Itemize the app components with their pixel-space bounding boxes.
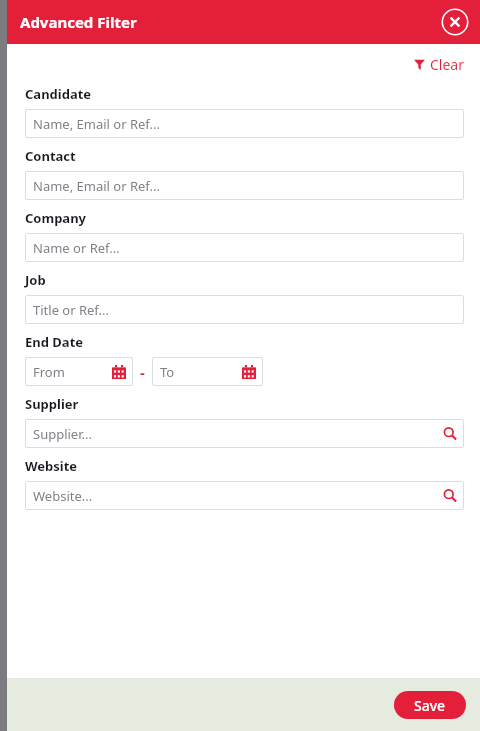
button[interactable]: To: [152, 357, 263, 386]
button[interactable]: Name, Email or Ref...: [25, 171, 464, 200]
other: Search: [442, 488, 457, 503]
staticText: Job: [25, 271, 46, 289]
button[interactable]: Save: [394, 691, 466, 719]
staticText: -: [140, 362, 145, 382]
staticText: Save: [414, 696, 446, 715]
staticText: Name, Email or Ref...: [33, 177, 457, 195]
staticText: Contact: [25, 147, 76, 165]
button[interactable]: Website...: [25, 481, 464, 510]
staticText: Name or Ref...: [33, 239, 457, 257]
staticText: From: [33, 363, 112, 381]
button[interactable]: From: [25, 357, 133, 386]
staticText: Supplier: [25, 395, 79, 413]
staticText: Title or Ref...: [33, 301, 457, 319]
other: Pick date: [242, 365, 256, 379]
staticText: Company: [25, 209, 87, 227]
staticText: Name, Email or Ref...: [33, 115, 457, 133]
other: Search: [442, 426, 457, 441]
staticText: Website...: [33, 487, 442, 505]
button[interactable]: Clear: [411, 53, 467, 76]
button[interactable]: Supplier...: [25, 419, 464, 448]
other: Pick date: [112, 365, 126, 379]
staticText: Candidate: [25, 85, 92, 103]
staticText: Website: [25, 457, 78, 475]
staticText: Clear: [430, 55, 464, 74]
button[interactable]: Close: [441, 8, 469, 36]
staticText: To: [160, 363, 242, 381]
button[interactable]: Name, Email or Ref...: [25, 109, 464, 138]
staticText: Advanced Filter: [20, 12, 137, 32]
staticText: Supplier...: [33, 425, 442, 443]
button[interactable]: Name or Ref...: [25, 233, 464, 262]
staticText: End Date: [25, 333, 84, 351]
button[interactable]: Title or Ref...: [25, 295, 464, 324]
